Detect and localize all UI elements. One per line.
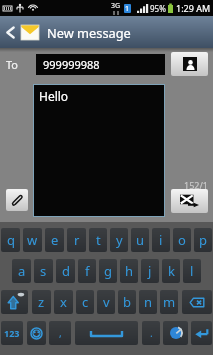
staticText: v [103,293,110,311]
staticText: m [163,293,176,311]
button[interactable]: s [34,259,53,283]
button[interactable]: x [54,290,73,314]
staticText: 1 [125,4,130,13]
button[interactable]: Emoji [27,321,46,345]
button[interactable]: u [131,228,149,252]
staticText: 152/1 [184,179,208,191]
staticText: , [59,326,62,340]
button[interactable]: h [120,259,138,283]
button[interactable]: Numbers [1,321,23,345]
staticText: g [104,262,112,280]
button[interactable]: Hello [34,85,164,216]
button[interactable]: a [12,259,31,283]
button[interactable]: Enter [191,321,212,345]
button[interactable]: g [99,259,117,283]
staticText: d [62,262,70,280]
staticText: 999999988 [43,57,100,72]
staticText: j [148,262,152,280]
button[interactable]: l [183,259,201,283]
button[interactable]: Period [142,321,160,345]
button[interactable]: e [45,228,64,252]
staticText: s [40,262,47,280]
staticText: f [85,262,90,280]
button[interactable]: n [139,290,157,314]
staticText: To [6,57,19,72]
button[interactable]: Shift [1,290,28,314]
staticText: q [7,231,15,249]
staticText: p [199,231,207,249]
staticText: z [38,293,45,311]
button[interactable]: f [78,259,96,283]
button[interactable]: 999999988 [43,54,165,75]
staticText: New message [47,24,131,41]
staticText: i [159,231,163,249]
button[interactable]: m [160,290,178,314]
button[interactable]: d [56,259,75,283]
button[interactable]: p [194,228,212,252]
staticText: o [178,231,186,249]
staticText: k [168,262,175,280]
staticText: e [51,231,59,249]
button[interactable]: c [76,290,94,314]
staticText: x [60,293,67,311]
staticText: 95% [150,3,166,14]
button[interactable]: r [67,228,86,252]
button[interactable]: k [162,259,180,283]
button[interactable]: z [32,290,51,314]
button[interactable]: Comma [49,321,71,345]
button[interactable]: Choose contact [172,53,207,75]
button[interactable]: j [141,259,159,283]
button[interactable]: Space [75,321,138,345]
staticText: t [96,231,101,249]
button[interactable]: o [173,228,191,252]
button[interactable]: t [89,228,107,252]
staticText: 1:29 AM [176,2,211,14]
staticText: w [27,231,38,249]
button[interactable]: v [97,290,115,314]
staticText: c [82,293,89,311]
button[interactable]: i [152,228,170,252]
button[interactable]: w [23,228,42,252]
button[interactable]: Delete [182,290,212,314]
staticText: u [136,231,145,249]
staticText: 3G [111,1,121,11]
staticText: b [123,293,131,311]
button[interactable]: Navigate up [0,16,21,48]
staticText: y [116,231,123,249]
staticText: n [144,293,153,311]
button[interactable]: q [1,228,20,252]
button[interactable]: Voice input [163,321,188,345]
staticText: Hello [39,88,69,104]
button[interactable]: y [110,228,128,252]
button[interactable]: b [118,290,136,314]
staticText: . [150,326,153,340]
staticText: r [74,231,80,249]
button[interactable]: Attach [7,190,27,210]
staticText: l [190,262,194,280]
button[interactable]: Send [172,190,207,212]
staticText: a [18,262,26,280]
staticText: 123 [4,327,20,339]
staticText: h [125,262,134,280]
